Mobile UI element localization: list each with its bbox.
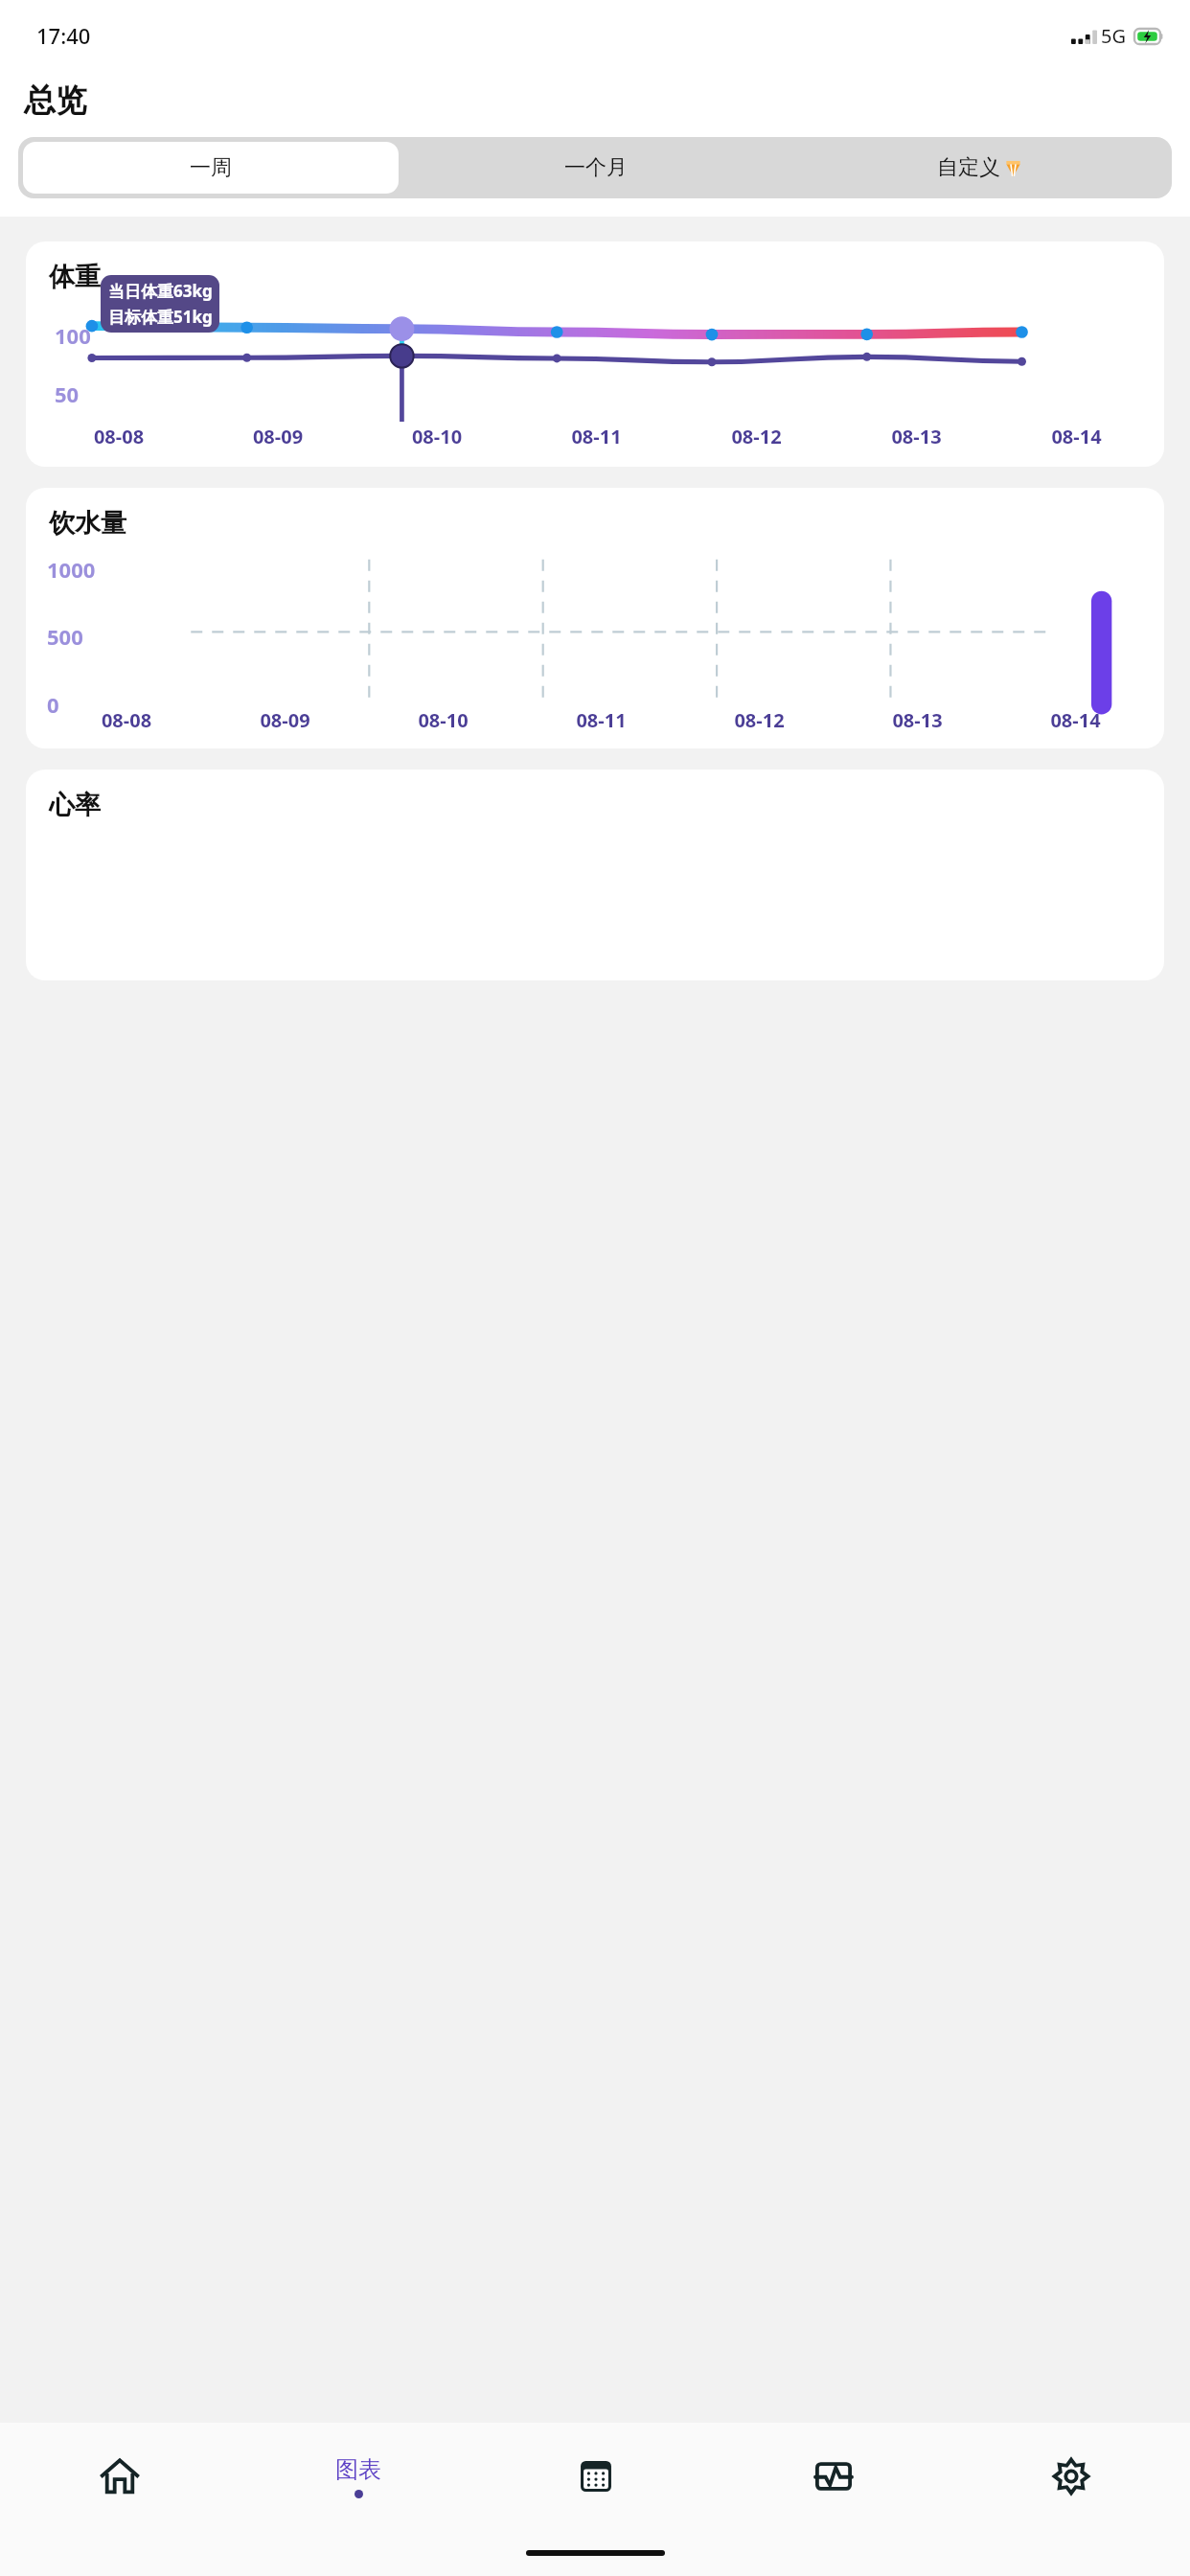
- staticText: 自定义: [937, 154, 1000, 181]
- staticText: 08-12: [680, 707, 838, 733]
- staticText: 心率: [49, 789, 101, 821]
- staticText: 图表: [335, 2455, 381, 2484]
- staticText: 一个月: [564, 154, 628, 181]
- staticText: 08-09: [206, 707, 364, 733]
- staticText: 100: [55, 321, 91, 350]
- button[interactable]: 饮水量: [26, 488, 1164, 748]
- staticText: 08-08: [47, 707, 206, 733]
- staticText: 总览: [24, 80, 87, 121]
- staticText: 08-08: [39, 424, 198, 449]
- button[interactable]: 一周: [23, 142, 399, 194]
- staticText: 08-09: [198, 424, 357, 449]
- staticText: 饮水量: [49, 507, 126, 540]
- staticText: 08-10: [364, 707, 522, 733]
- staticText: 500: [47, 622, 83, 651]
- button[interactable]: Monitor: [715, 2423, 952, 2530]
- staticText: 08-11: [516, 424, 676, 449]
- button[interactable]: 心率: [26, 770, 1164, 980]
- staticText: 0: [47, 690, 59, 719]
- staticText: 50: [55, 379, 80, 408]
- staticText: 08-14: [996, 424, 1156, 449]
- button[interactable]: Settings: [952, 2423, 1190, 2530]
- staticText: 目标体重51kg: [108, 306, 213, 328]
- staticText: 08-13: [836, 424, 996, 449]
- button[interactable]: 一个月: [403, 137, 788, 198]
- staticText: 当日体重63kg: [108, 280, 213, 302]
- staticText: 1000: [47, 555, 96, 584]
- staticText: 08-12: [676, 424, 836, 449]
- button[interactable]: 自定义: [788, 137, 1172, 198]
- staticText: 体重: [49, 261, 101, 293]
- button[interactable]: 体重: [26, 241, 1164, 467]
- staticText: 17:40: [36, 21, 91, 50]
- button[interactable]: Home: [0, 2423, 239, 2530]
- staticText: 08-14: [996, 707, 1155, 733]
- button[interactable]: Calendar: [477, 2423, 715, 2530]
- staticText: 08-13: [838, 707, 996, 733]
- staticText: 08-10: [357, 424, 516, 449]
- staticText: 一周: [190, 154, 232, 181]
- button[interactable]: 图表: [239, 2423, 477, 2530]
- staticText: 08-11: [522, 707, 680, 733]
- staticText: 5G: [1101, 23, 1126, 49]
